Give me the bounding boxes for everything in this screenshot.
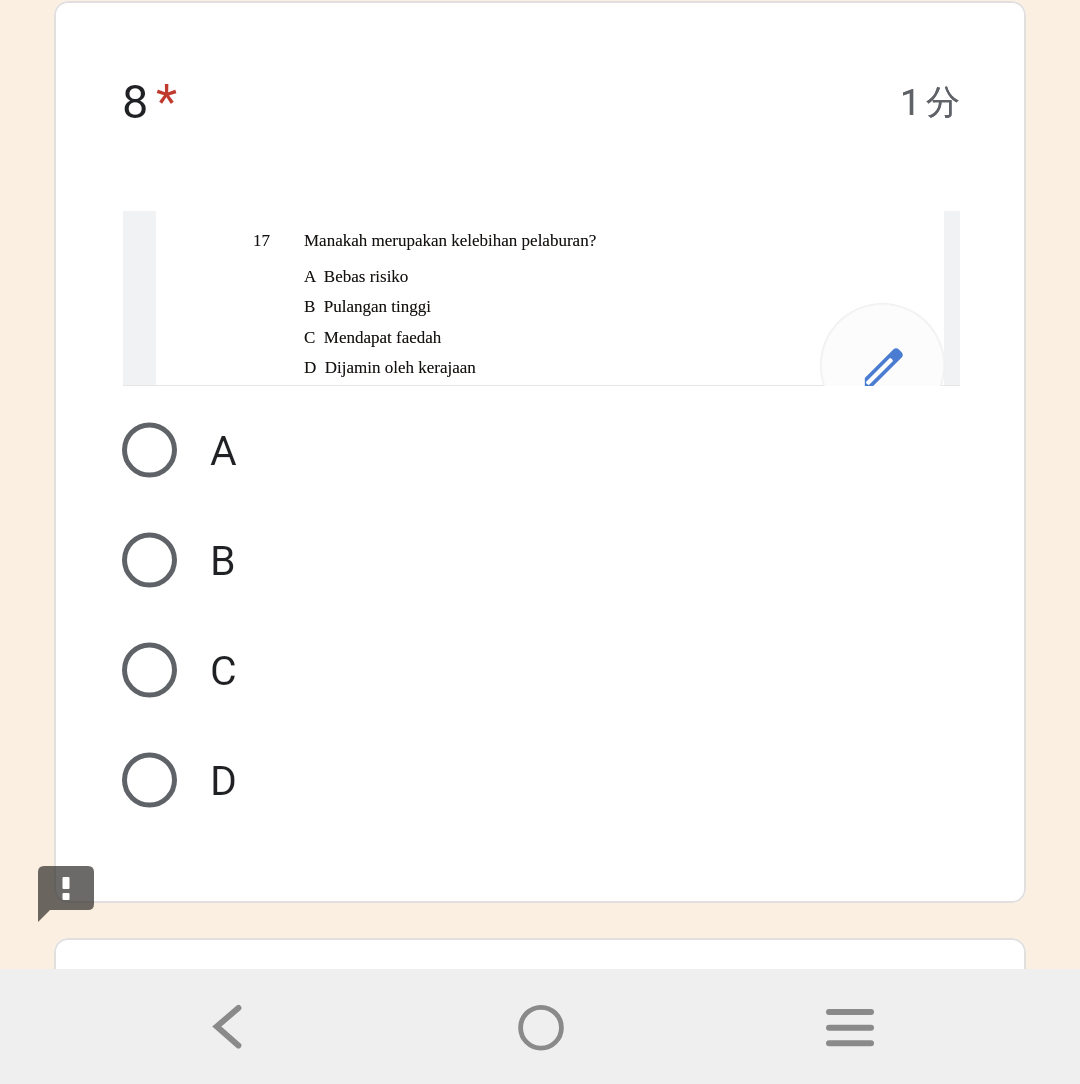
staticText: 17	[253, 231, 270, 250]
staticText: Manakah merupakan kelebihan pelaburan?	[304, 231, 597, 250]
staticText: B	[210, 537, 236, 585]
staticText: 17	[253, 231, 270, 250]
staticText: C Mendapat faedah	[304, 328, 442, 347]
button[interactable]: Home	[486, 987, 596, 1084]
staticText: 8	[122, 74, 149, 129]
staticText: D	[210, 757, 237, 805]
staticText: 分	[926, 81, 960, 124]
staticText: Manakah merupakan kelebihan pelaburan?	[304, 231, 597, 250]
button[interactable]	[54, 938, 1026, 1084]
staticText: C	[210, 647, 237, 695]
staticText: 1	[900, 81, 921, 124]
staticText: 1	[900, 81, 921, 124]
staticText: C Mendapat faedah	[304, 328, 442, 347]
staticText: D Dijamin oleh kerajaan	[304, 358, 476, 377]
button[interactable]	[54, 1, 1026, 903]
staticText: A	[210, 427, 237, 475]
button[interactable]: B	[110, 516, 955, 604]
staticText: B Pulangan tinggi	[304, 297, 432, 316]
staticText: A Bebas risiko	[304, 267, 409, 286]
staticText: D Dijamin oleh kerajaan	[304, 358, 476, 377]
staticText: 分	[926, 81, 960, 124]
staticText: *	[156, 73, 178, 130]
button[interactable]: A	[110, 406, 955, 494]
button[interactable]: 17	[123, 211, 960, 386]
button[interactable]: Edit image	[820, 303, 945, 386]
button[interactable]: Back	[172, 987, 282, 1084]
button[interactable]: C	[110, 626, 955, 714]
button[interactable]: D	[110, 736, 955, 824]
button[interactable]: Menu	[795, 987, 905, 1084]
staticText: B Pulangan tinggi	[304, 297, 432, 316]
staticText: A Bebas risiko	[304, 267, 409, 286]
